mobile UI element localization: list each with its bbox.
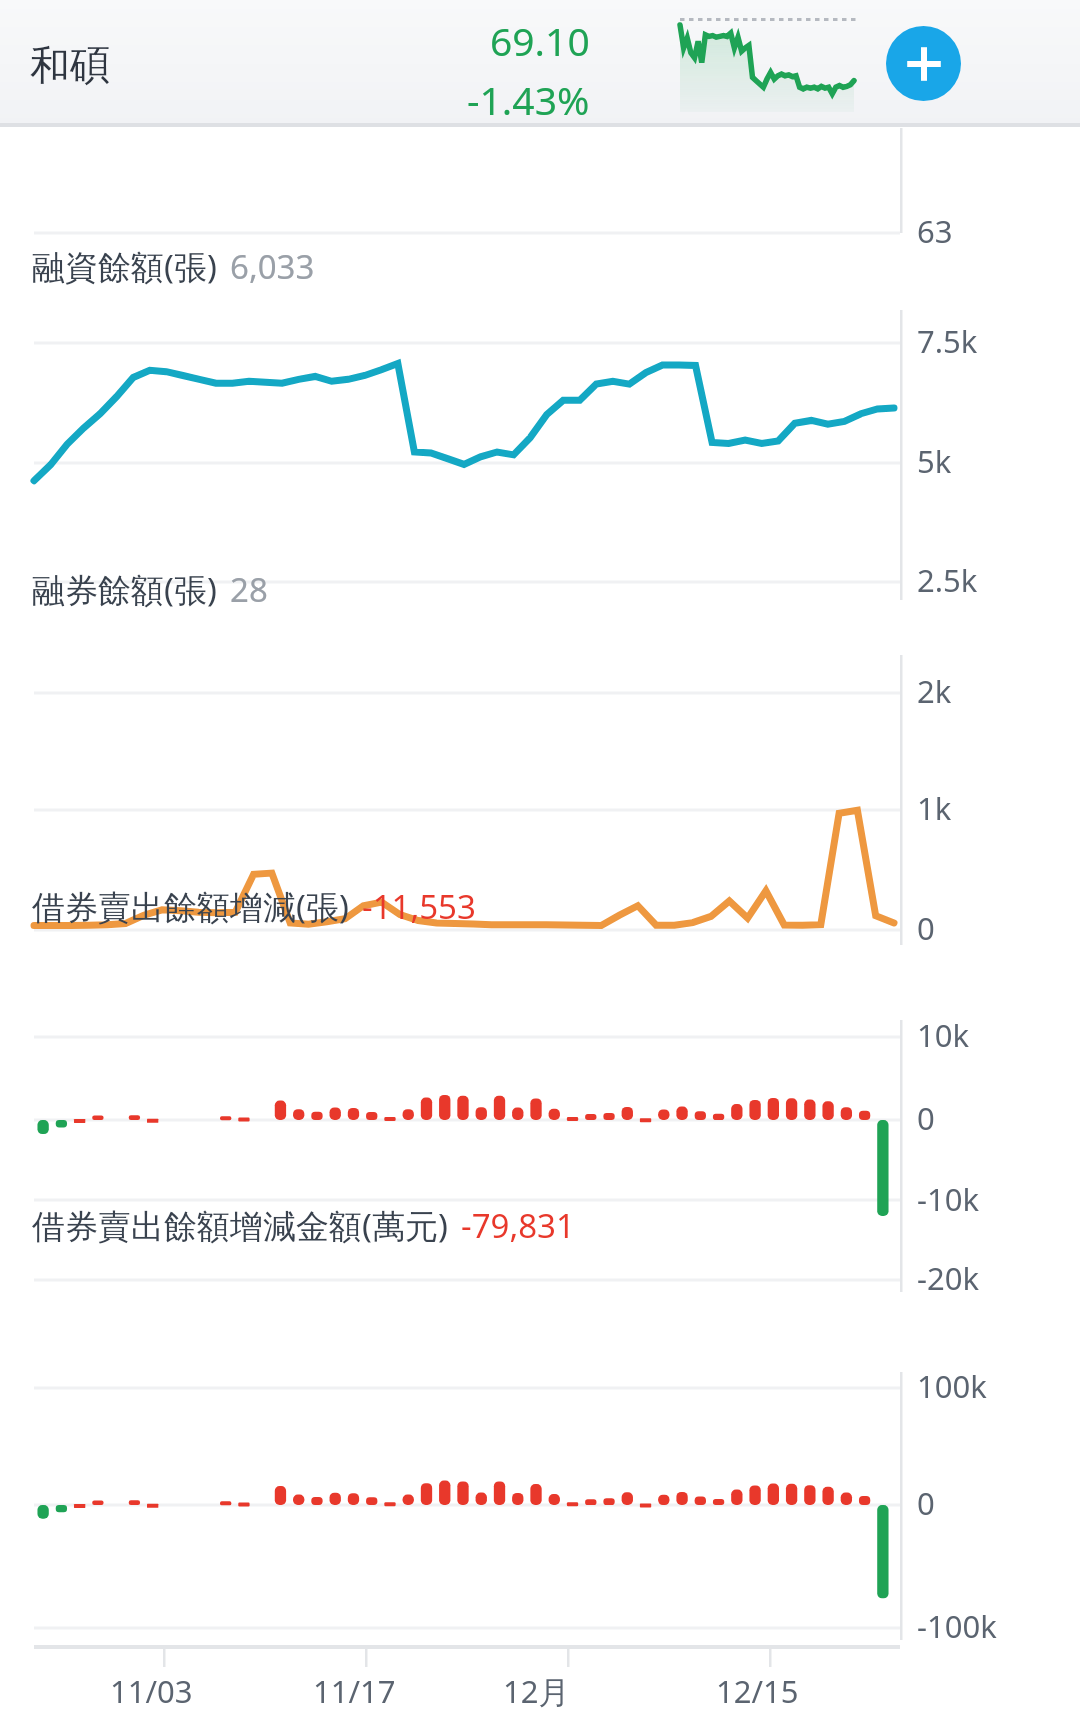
staticText: 2k	[917, 670, 952, 712]
button[interactable]: 借券賣出餘額增減金額(萬元)	[32, 1203, 575, 1248]
staticText: 6,033	[230, 244, 315, 289]
button[interactable]: Add to watchlist	[886, 26, 961, 101]
staticText: 融券餘額(張)	[32, 567, 217, 612]
staticText: 借券賣出餘額增減金額(萬元)	[32, 1203, 448, 1248]
staticText: -100k	[917, 1605, 997, 1647]
staticText: 0	[917, 1482, 935, 1524]
staticText: 63	[917, 210, 953, 252]
staticText: -10k	[917, 1178, 979, 1220]
staticText: 12月	[503, 1670, 570, 1711]
button[interactable]: 融資餘額(張)	[32, 244, 315, 289]
staticText: -1.43%	[467, 73, 590, 126]
staticText: 12/15	[716, 1670, 799, 1711]
staticText: 69.10	[490, 14, 590, 67]
staticText: 7.5k	[917, 320, 978, 362]
staticText: 融資餘額(張)	[32, 244, 217, 289]
staticText: 10k	[917, 1014, 970, 1056]
button[interactable]: Intraday price chart	[622, 12, 854, 112]
staticText: 5k	[917, 440, 952, 482]
button[interactable]: 融券餘額(張)	[32, 567, 268, 612]
staticText: 11/17	[313, 1670, 396, 1711]
button[interactable]: 借券賣出餘額增減(張)	[32, 884, 476, 929]
staticText: 0	[917, 1097, 935, 1139]
button[interactable]: 和碩	[30, 40, 110, 90]
staticText: 2.5k	[917, 559, 978, 601]
staticText: -11,553	[362, 884, 476, 929]
staticText: 借券賣出餘額增減(張)	[32, 884, 349, 929]
staticText: 0	[917, 907, 935, 949]
staticText: -79,831	[461, 1203, 575, 1248]
staticText: 28	[230, 567, 268, 612]
staticText: 100k	[917, 1365, 987, 1407]
staticText: 1k	[917, 787, 952, 829]
staticText: -20k	[917, 1257, 979, 1299]
staticText: 11/03	[110, 1670, 193, 1711]
